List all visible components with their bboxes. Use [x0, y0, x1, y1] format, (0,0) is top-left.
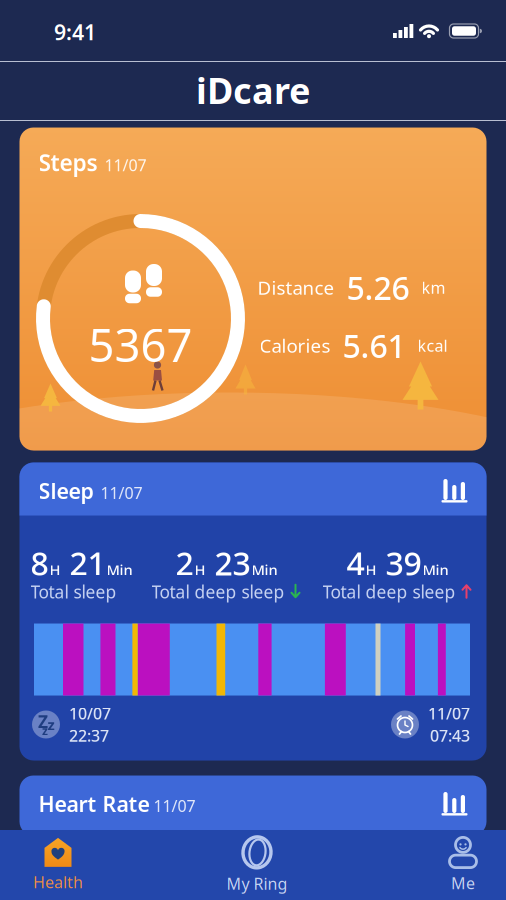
staticText: Heart Rate [38, 789, 149, 818]
staticText: 21 [61, 542, 105, 584]
staticText: Sleep [38, 476, 93, 505]
staticText: Total deep sleep [151, 580, 284, 603]
staticText: Min [106, 560, 132, 579]
staticText: Steps [38, 147, 97, 178]
staticText: z [42, 722, 48, 738]
staticText: H [194, 560, 205, 579]
button[interactable]: Sleep [19, 462, 486, 760]
staticText: km [421, 277, 445, 298]
staticText: 23 [206, 542, 250, 584]
staticText: 10/07 [69, 703, 111, 724]
staticText: Me [451, 872, 475, 894]
staticText: 39 [377, 542, 421, 584]
staticText: H [365, 560, 376, 579]
staticText: 2 [175, 542, 193, 584]
staticText: Total sleep [30, 580, 116, 603]
button[interactable]: 5367 [19, 127, 486, 450]
button[interactable]: Me [413, 832, 506, 898]
staticText: Distance [257, 275, 334, 300]
staticText: 4 [346, 542, 364, 584]
button[interactable]: Health [8, 832, 108, 898]
staticText: 9:41 [54, 18, 96, 46]
staticText: My Ring [226, 873, 287, 894]
staticText: 22:37 [69, 725, 109, 746]
staticText: Min [422, 560, 448, 579]
staticText: H [49, 560, 60, 579]
staticText: kcal [417, 335, 447, 356]
staticText: 5.26 [346, 266, 409, 309]
staticText: 07:43 [430, 725, 470, 746]
staticText: 11/07 [428, 703, 470, 724]
staticText: 11/07 [153, 795, 195, 816]
button[interactable]: Heart Rate [19, 775, 486, 835]
staticText: z [47, 715, 54, 734]
staticText: Calories [259, 333, 330, 358]
staticText: Z [38, 710, 48, 733]
button[interactable]: My Ring [207, 832, 307, 898]
staticText: Health [33, 871, 83, 893]
staticText: 5.61 [342, 324, 405, 367]
staticText: Total deep sleep [322, 580, 455, 603]
staticText: Min [251, 560, 277, 579]
staticText: iDcare [196, 66, 310, 114]
staticText: 8 [30, 542, 48, 584]
staticText: 11/07 [100, 482, 142, 503]
staticText: 5367 [88, 314, 192, 375]
staticText: 11/07 [104, 154, 146, 176]
